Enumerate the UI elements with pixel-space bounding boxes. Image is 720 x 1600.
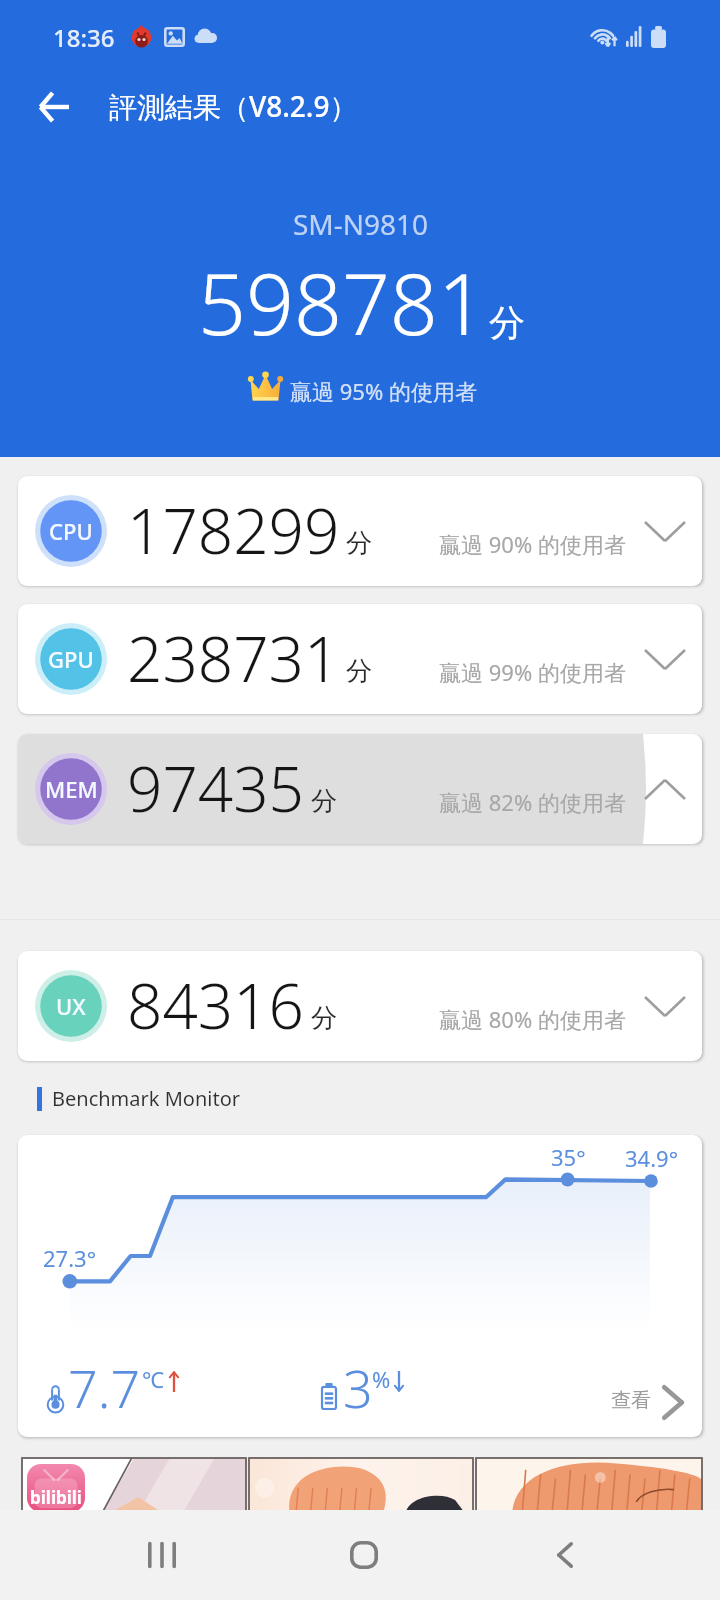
button[interactable]: Expand [628, 631, 702, 688]
button[interactable]: Expand [628, 503, 702, 560]
button[interactable]: 查看 [598, 1370, 688, 1426]
staticText: 7.7 [68, 1352, 141, 1423]
button[interactable]: bilibili [22, 1458, 246, 1512]
staticText: 238731 [127, 616, 340, 700]
staticText: 贏過 90% 的使用者 [439, 529, 626, 559]
button[interactable]: Back [505, 1520, 625, 1590]
staticText: 97435 [127, 746, 305, 830]
staticText: UX [56, 991, 86, 1021]
staticText: 分 [311, 1002, 337, 1035]
button[interactable]: MEM [18, 734, 702, 844]
staticText: 27.3° [43, 1243, 97, 1273]
staticText: 84316 [127, 963, 305, 1047]
staticText: 查看 [611, 1388, 651, 1413]
button[interactable]: CPU [18, 476, 702, 586]
button[interactable]: UX [18, 951, 702, 1061]
staticText: 分 [489, 300, 525, 345]
staticText: 贏過 80% 的使用者 [439, 1004, 626, 1034]
staticText: % [372, 1364, 391, 1394]
staticText: MEM [45, 774, 98, 804]
staticText: GPU [48, 644, 94, 674]
staticText: 分 [311, 785, 337, 818]
staticText: bilibili [30, 1486, 82, 1509]
staticText: 贏過 95% 的使用者 [290, 376, 477, 406]
staticText: 贏過 82% 的使用者 [439, 787, 626, 817]
staticText: 18:36 [53, 21, 115, 54]
button[interactable]: Recent apps [102, 1520, 222, 1590]
staticText: 35° [551, 1142, 586, 1172]
button[interactable] [476, 1458, 702, 1512]
button[interactable]: Collapse [628, 761, 702, 818]
button[interactable]: 27.3° [18, 1135, 702, 1437]
button[interactable]: GPU [18, 604, 702, 714]
staticText: CPU [49, 516, 93, 546]
staticText: 178299 [127, 488, 340, 572]
staticText: SM-N9810 [293, 205, 429, 243]
button[interactable]: Back [18, 72, 88, 142]
staticText: 分 [346, 655, 372, 688]
staticText: 34.9° [625, 1143, 679, 1173]
staticText: 598781 [198, 245, 486, 359]
staticText: Benchmark Monitor [52, 1085, 240, 1112]
button[interactable] [249, 1458, 473, 1512]
staticText: 分 [346, 527, 372, 560]
button[interactable]: Home [304, 1520, 424, 1590]
staticText: 3 [343, 1352, 373, 1423]
staticText: ℃ [142, 1364, 164, 1394]
button[interactable]: Expand [628, 978, 702, 1035]
staticText: 評測結果（V8.2.9） [109, 87, 358, 125]
staticText: 贏過 99% 的使用者 [439, 657, 626, 687]
